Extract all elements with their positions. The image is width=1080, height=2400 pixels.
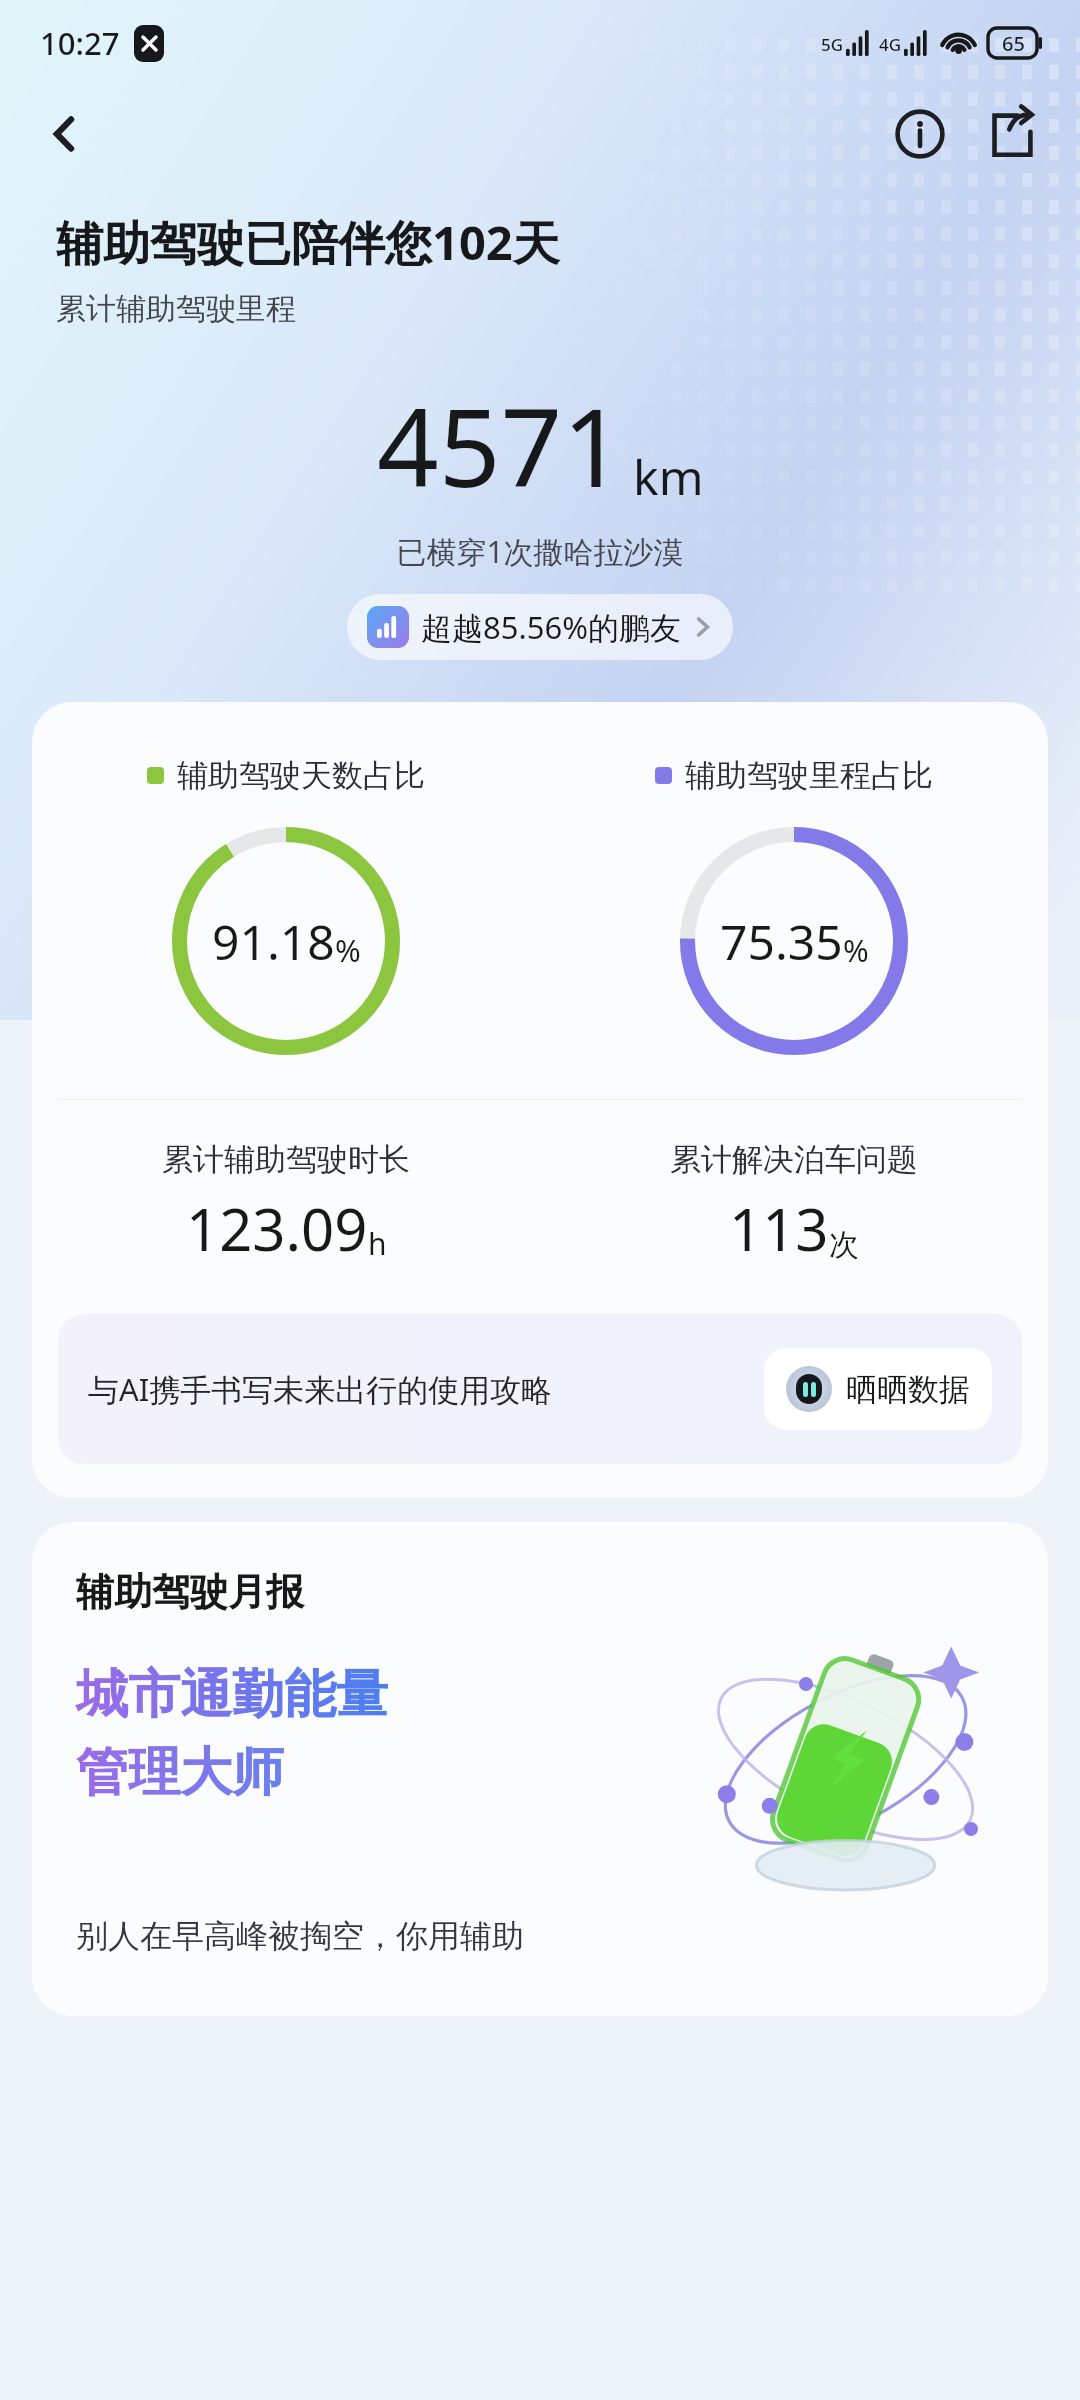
staticText: 5G <box>821 33 844 56</box>
staticText: 113 <box>729 1189 829 1268</box>
staticText: 累计解决泊车问题 <box>670 1140 918 1179</box>
button[interactable]: Back <box>28 97 102 171</box>
staticText: km <box>633 444 704 509</box>
staticText: 辅助驾驶已陪伴您102天 <box>56 210 560 274</box>
button[interactable]: 晒晒数据 <box>764 1348 992 1430</box>
button[interactable]: Info <box>882 96 958 172</box>
staticText: 城市通勤能量 <box>76 1662 388 1728</box>
staticText: 与AI携手书写未来出行的使用攻略 <box>88 1368 744 1410</box>
staticText: 晒晒数据 <box>846 1370 970 1409</box>
staticText: 次 <box>829 1226 859 1264</box>
staticText: 已横穿1次撒哈拉沙漠 <box>0 531 1080 572</box>
staticText: % <box>335 929 361 971</box>
button[interactable]: 与AI携手书写未来出行的使用攻略 <box>58 1314 1022 1464</box>
button[interactable]: 超越85.56%的鹏友 <box>347 594 733 660</box>
staticText: 辅助驾驶天数占比 <box>177 756 425 795</box>
staticText: 超越85.56%的鹏友 <box>421 606 681 648</box>
staticText: 累计辅助驾驶里程 <box>56 290 296 328</box>
staticText: 别人在早高峰被掏空，你用辅助 <box>76 1916 524 1956</box>
staticText: 65 <box>1002 30 1025 57</box>
staticText: 91.18 <box>212 909 335 974</box>
staticText: 辅助驾驶里程占比 <box>685 756 933 795</box>
staticText: 4571 <box>377 372 625 519</box>
staticText: 4G <box>879 33 902 56</box>
staticText: % <box>843 929 869 971</box>
staticText: 123.09 <box>186 1189 368 1268</box>
staticText: 10:27 <box>40 22 120 64</box>
staticText: 辅助驾驶月报 <box>76 1568 304 1616</box>
staticText: 累计辅助驾驶时长 <box>162 1140 410 1179</box>
button[interactable]: 辅助驾驶月报 <box>32 1522 1048 2016</box>
button[interactable]: Share <box>974 96 1050 172</box>
staticText: 管理大师 <box>76 1740 284 1806</box>
staticText: h <box>368 1223 387 1264</box>
staticText: 75.35 <box>720 909 843 974</box>
